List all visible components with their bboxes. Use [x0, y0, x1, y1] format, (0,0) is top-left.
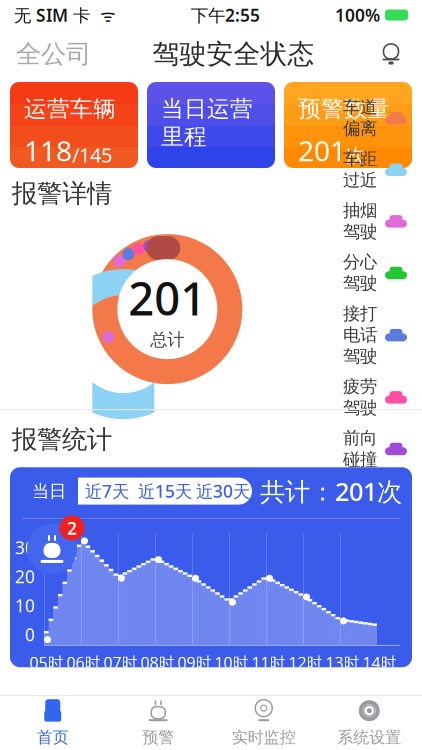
staticText: 118	[24, 132, 72, 169]
staticText: 0	[25, 623, 35, 646]
staticText: 预警数量	[298, 95, 390, 123]
button[interactable]: 系统设置	[316, 696, 422, 750]
staticText: 共计：201次	[260, 474, 402, 508]
staticText: 201	[298, 132, 346, 169]
staticText: 14时	[362, 652, 396, 673]
staticText: 05时	[29, 652, 63, 673]
staticText: 12时	[288, 652, 322, 673]
staticText: 报警统计	[12, 424, 112, 455]
button[interactable]: 近30天	[194, 478, 252, 505]
button[interactable]: 预警	[105, 696, 211, 750]
staticText: 10	[15, 594, 35, 617]
staticText: 抽烟驾驶	[343, 200, 377, 242]
staticText: 总计	[150, 329, 184, 350]
button[interactable]: 当日	[20, 478, 78, 505]
staticText: 车道偏离	[343, 97, 377, 139]
staticText: 疲劳驾驶	[343, 376, 377, 418]
staticText: 接打电话驾驶	[343, 303, 377, 367]
staticText: 首页	[37, 728, 69, 747]
button[interactable]: 运营车辆	[10, 82, 138, 168]
staticText: 车距过近	[343, 148, 377, 191]
button[interactable]: 近15天	[136, 478, 194, 505]
staticText: 无 SIM 卡 ᯤ	[14, 3, 116, 26]
staticText: 08时	[140, 652, 174, 673]
staticText: 预警	[142, 728, 174, 747]
staticText: 09时	[177, 652, 211, 673]
button[interactable]: 首页	[0, 696, 105, 750]
staticText: 2	[67, 516, 77, 539]
staticText: 10时	[214, 652, 248, 673]
staticText: 近15天	[138, 480, 192, 503]
button[interactable]: 通知	[360, 30, 422, 78]
staticText: 近30天	[196, 480, 250, 503]
staticText: 实时监控	[232, 728, 296, 747]
staticText: 10470	[161, 160, 241, 197]
staticText: 下午2:55	[191, 3, 260, 26]
button[interactable]: 实时监控	[211, 696, 316, 750]
staticText: 全公司	[16, 38, 91, 69]
button[interactable]: 全公司	[0, 30, 107, 78]
staticText: 07时	[103, 652, 137, 673]
staticText: 100%	[335, 3, 380, 26]
staticText: 当日运营里程	[161, 95, 253, 151]
staticText: /145	[72, 141, 112, 168]
staticText: 前向碰撞	[343, 427, 377, 470]
staticText: 201	[128, 268, 206, 328]
staticText: 系统设置	[337, 728, 401, 747]
staticText: 分心驾驶	[343, 251, 377, 294]
staticText: 06时	[66, 652, 100, 673]
staticText: 驾驶安全状态	[152, 38, 314, 70]
staticText: 报警详情	[12, 178, 112, 209]
staticText: 运营车辆	[24, 95, 116, 123]
button[interactable]: 当日运营里程	[147, 82, 275, 168]
staticText: 13时	[325, 652, 359, 673]
staticText: 30	[15, 536, 35, 559]
staticText: 11时	[251, 652, 285, 673]
button[interactable]: 预警数量	[284, 82, 412, 168]
staticText: 次	[346, 143, 366, 168]
staticText: 20	[15, 565, 35, 588]
staticText: 无驾驶员	[343, 479, 377, 522]
button[interactable]: 近7天	[78, 478, 136, 505]
staticText: 近7天	[85, 480, 129, 503]
staticText: 当日	[32, 480, 66, 502]
